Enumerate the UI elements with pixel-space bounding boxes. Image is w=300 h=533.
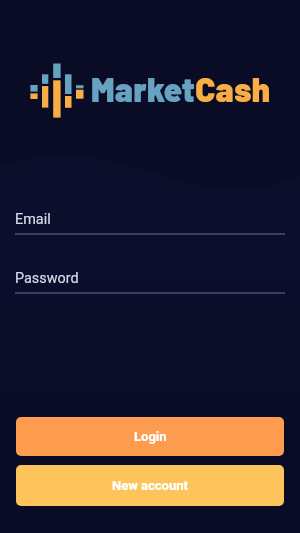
- staticText: MarketCash: [91, 69, 271, 109]
- button[interactable]: New account: [16, 465, 284, 506]
- staticText: New account: [112, 478, 188, 493]
- staticText: Email: [15, 211, 51, 228]
- button[interactable]: Login: [16, 417, 284, 456]
- staticText: Login: [134, 429, 167, 444]
- staticText: Password: [15, 270, 79, 287]
